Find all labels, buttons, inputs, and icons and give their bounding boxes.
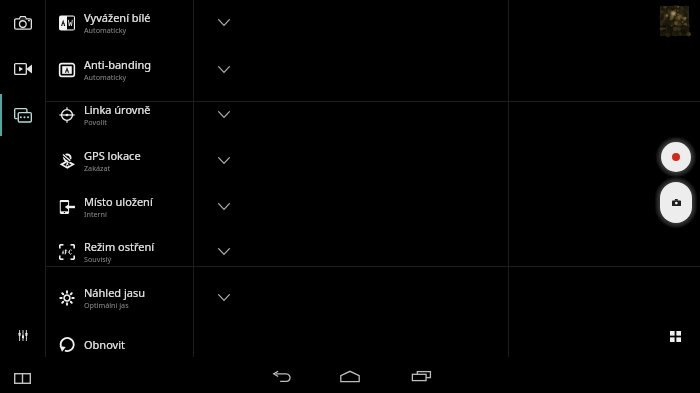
staticText: Místo uložení [84, 194, 153, 209]
button[interactable]: Adjustments [4, 318, 41, 353]
button[interactable]: Anti-banding [46, 46, 193, 92]
button[interactable]: Linka úrovně [46, 91, 193, 137]
staticText: Anti-banding [84, 57, 152, 72]
button[interactable]: Split screen [4, 363, 40, 393]
staticText: Vyvážení bílé [84, 10, 151, 25]
staticText: Automaticky [84, 72, 127, 82]
button[interactable]: Back [259, 359, 303, 393]
staticText: GPS lokace [84, 148, 141, 163]
staticText: Zakázat [84, 163, 111, 173]
button[interactable]: Místo uložení [46, 183, 193, 229]
button[interactable]: Gallery [660, 6, 689, 36]
button[interactable]: Expand [206, 237, 241, 265]
button[interactable]: Take photo [660, 182, 692, 223]
button[interactable]: Camera mode [4, 5, 41, 40]
button[interactable]: GPS lokace [46, 137, 193, 183]
staticText: Obnovit [84, 337, 125, 352]
button[interactable]: Recents [399, 359, 443, 393]
button[interactable]: Record video [661, 142, 691, 172]
staticText: Náhled jasu [84, 285, 146, 300]
staticText: Linka úrovně [84, 102, 151, 117]
button[interactable]: Vyvážení bílé [46, 0, 193, 45]
button[interactable]: Video mode [4, 51, 41, 86]
staticText: Interní [84, 209, 107, 219]
button[interactable]: Expand [206, 100, 241, 128]
button[interactable]: More settings [0, 94, 45, 136]
button[interactable]: Expand [206, 192, 241, 220]
button[interactable]: Home [328, 359, 372, 393]
button[interactable]: Náhled jasu [46, 274, 193, 320]
button[interactable]: Expand [206, 146, 241, 174]
staticText: Režim ostření [84, 239, 155, 254]
button[interactable]: Obnovit [46, 321, 193, 367]
button[interactable]: Expand [206, 55, 241, 83]
button[interactable]: Expand [206, 283, 241, 311]
staticText: Povolit [84, 117, 107, 127]
staticText: Souvislý [84, 254, 112, 264]
staticText: Automaticky [84, 25, 127, 35]
button[interactable]: Režim ostření [46, 228, 193, 274]
button[interactable]: Shooting modes [657, 318, 693, 353]
staticText: Optimální jas [84, 300, 129, 310]
button[interactable]: Expand [206, 8, 241, 36]
